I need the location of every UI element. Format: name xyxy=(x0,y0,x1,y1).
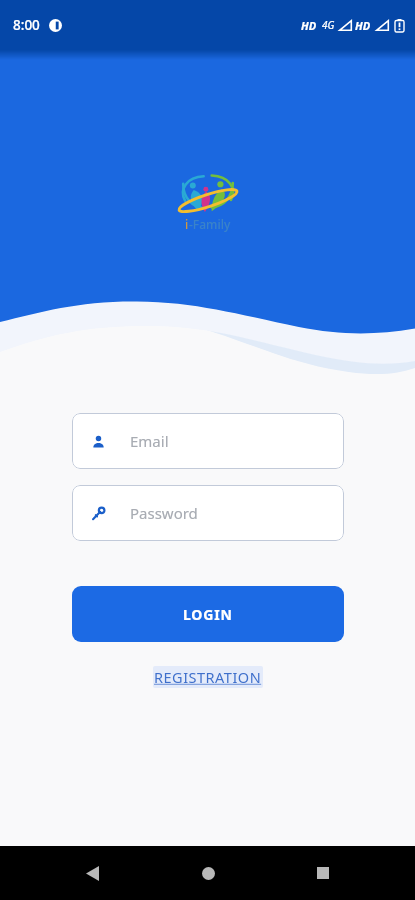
staticText: HD xyxy=(301,18,317,33)
button[interactable]: Recent apps xyxy=(299,849,347,897)
staticText: Email xyxy=(130,431,169,451)
button[interactable]: Password xyxy=(72,485,344,541)
staticText: REGISTRATION xyxy=(154,667,262,687)
button[interactable]: Back xyxy=(68,849,116,897)
staticText: 4G xyxy=(322,18,335,32)
staticText: Password xyxy=(130,503,198,523)
staticText: i xyxy=(185,216,189,232)
staticText: 8:00 xyxy=(13,16,40,34)
button[interactable]: Email xyxy=(72,413,344,469)
staticText: -Family xyxy=(189,216,231,232)
button[interactable]: REGISTRATION xyxy=(153,666,263,688)
button[interactable]: Home xyxy=(184,849,232,897)
button[interactable]: LOGIN xyxy=(72,586,344,642)
staticText: HD xyxy=(355,18,371,33)
staticText: LOGIN xyxy=(183,605,233,624)
